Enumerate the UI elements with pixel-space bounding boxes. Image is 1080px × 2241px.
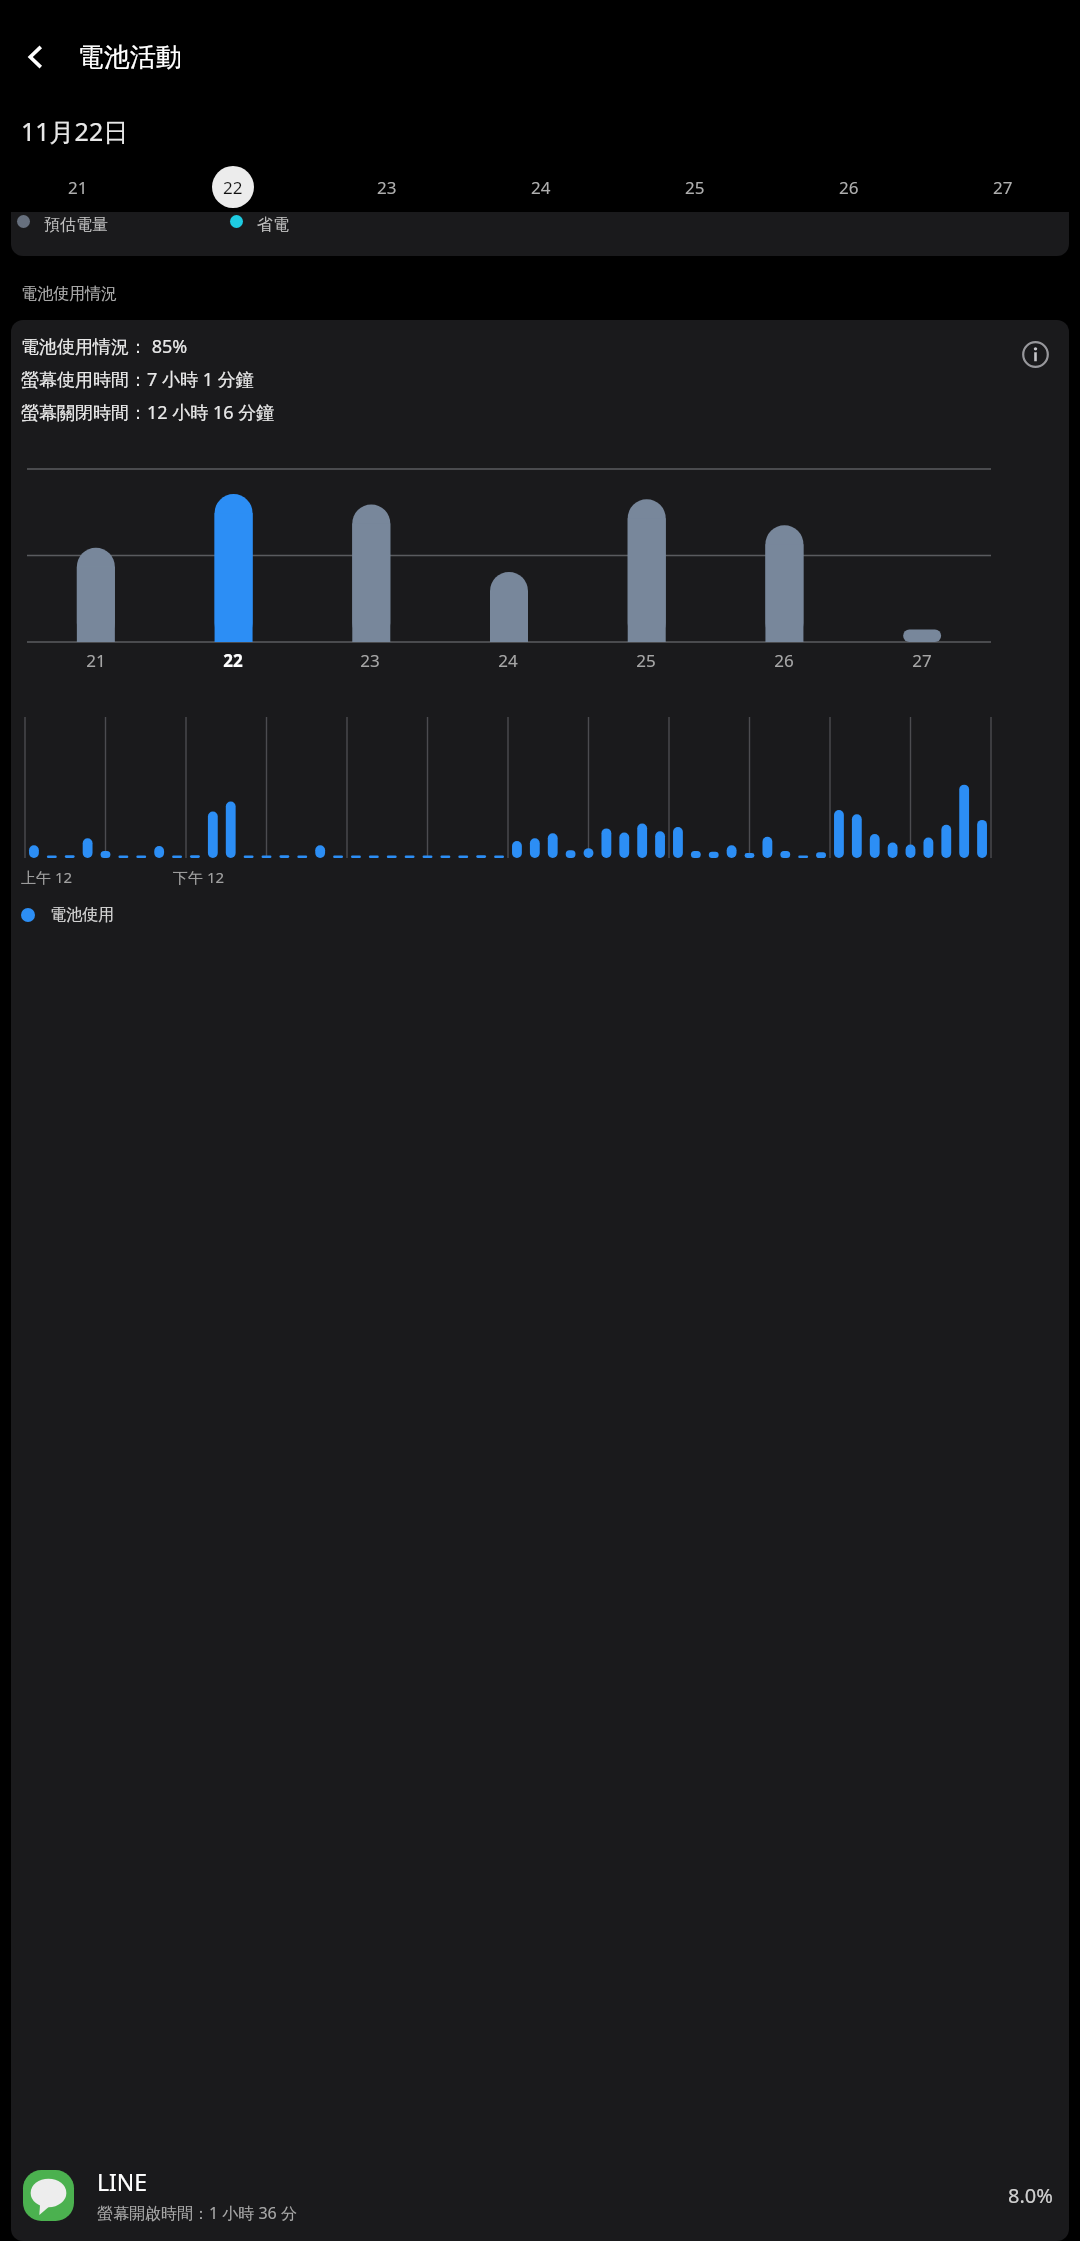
staticText: 11月22日 (21, 114, 129, 148)
staticText: 8.0% (1008, 2182, 1053, 2209)
staticText: 螢幕開啟時間：1 小時 36 分 (97, 2202, 297, 2224)
button[interactable]: 預估電量 (11, 212, 1069, 256)
staticText: 21 (68, 176, 88, 199)
staticText: 23 (377, 176, 397, 199)
staticText: 省電 (257, 215, 289, 235)
staticText: 24 (498, 649, 518, 672)
button[interactable]: 25 (618, 162, 772, 212)
button[interactable]: Information (1015, 334, 1055, 374)
staticText: 26 (839, 176, 859, 199)
button[interactable]: 27 (926, 162, 1080, 212)
staticText: LINE (97, 2166, 148, 2197)
button[interactable]: LINE (11, 2149, 1069, 2241)
staticText: 26 (774, 649, 794, 672)
staticText: 下午 12 (173, 867, 225, 887)
staticText: 23 (360, 649, 380, 672)
staticText: 電池活動 (78, 41, 182, 74)
staticText: 電池使用情況 (21, 284, 117, 304)
staticText: 27 (993, 176, 1013, 199)
staticText: 22 (223, 649, 243, 672)
button[interactable]: 21 (0, 162, 155, 212)
staticText: 上午 12 (21, 867, 73, 887)
staticText: 電池使用 (50, 905, 114, 925)
staticText: 24 (531, 176, 551, 199)
staticText: 電池使用情況： 85% (21, 334, 188, 359)
staticText: 21 (86, 649, 106, 672)
button[interactable]: 26 (772, 162, 926, 212)
button[interactable]: 22 (155, 162, 310, 212)
staticText: 螢幕關閉時間：12 小時 16 分鐘 (21, 400, 275, 425)
button[interactable]: 24 (464, 162, 618, 212)
staticText: 25 (685, 176, 705, 199)
staticText: 預估電量 (44, 215, 108, 235)
staticText: 25 (636, 649, 656, 672)
button[interactable]: Back (10, 31, 62, 83)
staticText: 27 (912, 649, 932, 672)
staticText: 螢幕使用時間：7 小時 1 分鐘 (21, 367, 254, 392)
staticText: 22 (223, 176, 243, 199)
button[interactable]: 23 (310, 162, 464, 212)
